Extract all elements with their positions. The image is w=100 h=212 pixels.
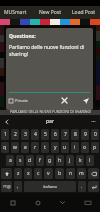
button[interactable]: g: [46, 155, 54, 166]
staticText: Load Post: [72, 9, 96, 16]
staticText: n: [69, 170, 73, 177]
button[interactable]: j: [66, 155, 74, 166]
button[interactable]: r: [31, 142, 39, 153]
staticText: 0: [94, 131, 97, 138]
button[interactable]: e: [21, 142, 29, 153]
button[interactable]: Hide keyboard: [50, 193, 75, 212]
staticText: a: [9, 157, 12, 164]
button[interactable]: Recents: [0, 193, 25, 212]
button[interactable]: 5: [41, 129, 49, 140]
staticText: x: [27, 170, 30, 177]
staticText: Questions:: [9, 33, 36, 40]
staticText: .: [81, 183, 83, 190]
staticText: MUSmart: [4, 9, 27, 16]
button[interactable]: Backspace: [88, 168, 99, 179]
button[interactable]: s: [16, 155, 24, 166]
button[interactable]: Clear: [60, 96, 69, 105]
staticText: 6: [54, 131, 57, 138]
staticText: y: [54, 144, 57, 151]
button[interactable]: t: [41, 142, 49, 153]
button[interactable]: h: [56, 155, 64, 166]
staticText: 8: [74, 131, 77, 138]
staticText: italiano: [43, 184, 57, 189]
staticText: l: [89, 157, 91, 164]
button[interactable]: 8: [71, 129, 79, 140]
button[interactable]: o: [81, 142, 89, 153]
staticText: Parliamo delle nuove funzioni di sharing…: [9, 44, 85, 57]
button[interactable]: Load Post: [67, 6, 100, 19]
staticText: p: [93, 144, 97, 151]
button[interactable]: Shift: [1, 168, 12, 179]
button[interactable]: 3: [21, 129, 29, 140]
staticText: f: [39, 157, 41, 164]
staticText: v: [47, 170, 50, 177]
button[interactable]: a: [6, 155, 14, 166]
button[interactable]: y: [51, 142, 59, 153]
button[interactable]: u: [61, 142, 69, 153]
button[interactable]: z: [14, 168, 22, 179]
button[interactable]: w: [11, 142, 19, 153]
button[interactable]: q: [1, 142, 9, 153]
button[interactable]: i: [71, 142, 79, 153]
staticText: m: [79, 170, 84, 177]
staticText: k: [79, 157, 82, 164]
button[interactable]: c: [34, 168, 42, 179]
button[interactable]: par: [14, 115, 86, 128]
button[interactable]: ?1@: [1, 181, 12, 192]
button[interactable]: x: [24, 168, 32, 179]
button[interactable]: Enter: [88, 181, 99, 192]
button[interactable]: MUSmart: [0, 6, 34, 19]
staticText: u: [63, 144, 67, 151]
staticText: c: [37, 170, 40, 177]
staticText: b: [58, 170, 62, 177]
button[interactable]: Private: [9, 97, 29, 104]
button[interactable]: v: [44, 168, 53, 179]
staticText: 3: [24, 131, 27, 138]
staticText: 7: [64, 131, 67, 138]
button[interactable]: Home: [25, 193, 50, 212]
button[interactable]: n: [66, 168, 75, 179]
staticText: s: [19, 157, 22, 164]
staticText: New Post: [39, 9, 62, 16]
staticText: PARLIAMO DELLE NUOVE FUNZIONI DI SHARING…: [10, 109, 91, 114]
button[interactable]: k: [76, 155, 84, 166]
staticText: r: [34, 144, 37, 151]
staticText: 2: [14, 131, 17, 138]
staticText: o: [83, 144, 87, 151]
staticText: ?1@: [3, 184, 11, 189]
button[interactable]: 7: [61, 129, 69, 140]
button[interactable]: ,: [14, 181, 22, 192]
staticText: h: [58, 157, 62, 164]
staticText: g: [48, 157, 52, 164]
staticText: w: [13, 144, 17, 151]
staticText: i: [74, 144, 76, 151]
button[interactable]: 1: [1, 129, 9, 140]
button[interactable]: 4: [31, 129, 39, 140]
staticText: 1: [4, 131, 7, 138]
button[interactable]: b: [55, 168, 64, 179]
staticText: z: [17, 170, 20, 177]
staticText: 4: [34, 131, 37, 138]
staticText: ,: [17, 183, 19, 190]
staticText: d: [28, 157, 32, 164]
button[interactable]: 6: [51, 129, 59, 140]
button[interactable]: New Post: [34, 6, 67, 19]
staticText: t: [44, 144, 46, 151]
button[interactable]: 2: [11, 129, 19, 140]
staticText: q: [3, 144, 7, 151]
button[interactable]: .: [78, 181, 86, 192]
button[interactable]: Previous suggestions: [0, 115, 14, 128]
button[interactable]: f: [36, 155, 44, 166]
button[interactable]: p: [91, 142, 99, 153]
button[interactable]: m: [77, 168, 86, 179]
button[interactable]: 9: [81, 129, 89, 140]
button[interactable]: More options: [86, 115, 100, 128]
button[interactable]: Send: [81, 96, 90, 105]
button[interactable]: 0: [91, 129, 99, 140]
button[interactable]: italiano: [24, 181, 76, 192]
button[interactable]: d: [26, 155, 34, 166]
button[interactable]: l: [86, 155, 94, 166]
staticText: 5: [44, 131, 47, 138]
button[interactable]: Switch keyboard: [75, 193, 100, 212]
staticText: j: [69, 157, 71, 164]
